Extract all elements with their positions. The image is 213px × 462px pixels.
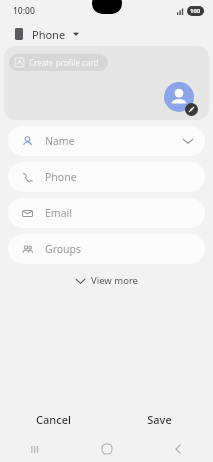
button[interactable]: Edit photo [185, 103, 198, 116]
button[interactable]: View more [66, 269, 148, 292]
staticText: Phone [45, 170, 77, 184]
staticText: Email [45, 206, 72, 220]
button[interactable]: Phone [8, 162, 205, 192]
button[interactable]: Home [71, 436, 142, 462]
staticText: Name [45, 134, 75, 148]
staticText: Save [147, 412, 172, 427]
staticText: View more [91, 274, 138, 287]
staticText: Groups [45, 242, 82, 256]
button[interactable]: Recents [0, 436, 71, 462]
staticText: Cancel [36, 412, 71, 427]
button[interactable]: Profile photo [164, 82, 194, 112]
staticText: 10:00 [13, 5, 35, 17]
button[interactable]: Back [142, 436, 213, 462]
button[interactable]: Save [106, 402, 213, 436]
button[interactable]: Name [8, 126, 205, 156]
button[interactable]: Cancel [0, 402, 106, 436]
button[interactable]: Groups [8, 234, 205, 264]
staticText: Create profile card [29, 57, 99, 68]
button[interactable]: Create profile card [9, 54, 108, 71]
staticText: 100 [190, 7, 201, 15]
button[interactable]: Email [8, 198, 205, 228]
staticText: Phone [32, 27, 66, 42]
button[interactable]: Phone [0, 22, 213, 46]
